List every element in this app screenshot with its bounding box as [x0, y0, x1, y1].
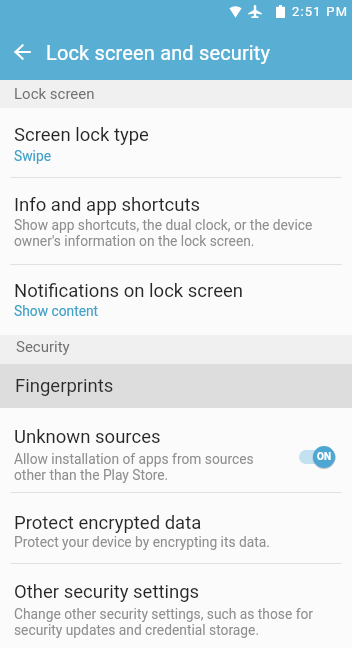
staticText: ON — [317, 451, 331, 463]
staticText: Other security settings — [14, 581, 200, 603]
staticText: Show app shortcuts, the dual clock, or t… — [14, 217, 313, 249]
staticText: Security — [16, 338, 70, 356]
button[interactable]: Other security settings — [0, 564, 352, 648]
staticText: Unknown sources — [14, 426, 161, 448]
button[interactable]: Protect encrypted data — [0, 493, 352, 563]
button[interactable]: Info and app shortcuts — [0, 178, 352, 264]
staticText: Show content — [14, 303, 99, 319]
staticText: Protect encrypted data — [14, 512, 202, 534]
staticText: Change other security settings, such as … — [14, 606, 313, 638]
button[interactable]: Unknown sources — [0, 408, 352, 492]
staticText: Screen lock type — [14, 124, 149, 146]
staticText: Allow installation of apps from sources … — [14, 451, 254, 483]
staticText: 2:51 PM — [292, 4, 349, 19]
staticText: Swipe — [14, 148, 51, 164]
staticText: Lock screen and security — [46, 41, 271, 64]
button[interactable] — [0, 24, 46, 80]
staticText: Fingerprints — [15, 375, 114, 397]
staticText: Lock screen — [14, 85, 95, 103]
button[interactable]: Screen lock type — [0, 108, 352, 177]
button[interactable]: ON — [299, 445, 336, 469]
button[interactable]: Fingerprints — [0, 364, 352, 408]
staticText: Protect your device by encrypting its da… — [14, 534, 270, 550]
staticText: Info and app shortcuts — [14, 194, 201, 216]
button[interactable]: Notifications on lock screen — [0, 265, 352, 335]
staticText: Notifications on lock screen — [14, 280, 243, 302]
